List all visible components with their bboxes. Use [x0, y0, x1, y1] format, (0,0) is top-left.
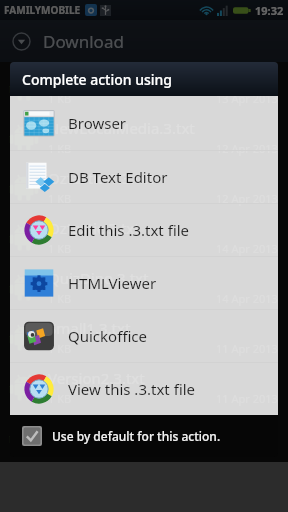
staticText: 13 Apr 2013: [216, 91, 278, 106]
button[interactable]: DB Text Editor: [10, 151, 278, 203]
button[interactable]: HTMLViewer: [10, 257, 278, 309]
staticText: 1 KB: [48, 391, 72, 406]
staticText: MyApps.3.txt: [48, 68, 140, 88]
button[interactable]: MyApps.3.txt: [8, 62, 280, 112]
button[interactable]: VideoOne.3.txt: [8, 412, 280, 462]
staticText: 1 KB: [48, 291, 72, 306]
staticText: Oztastic.3.txt: [48, 218, 140, 238]
staticText: 19:32: [255, 3, 284, 18]
button[interactable]: Edit this .3.txt file: [10, 204, 278, 256]
staticText: FAMILYMOBILE: [4, 3, 81, 17]
staticText: Use by default for this action.: [52, 428, 221, 444]
staticText: Download: [43, 30, 124, 53]
staticText: Browser: [68, 113, 127, 133]
staticText: 1 KB: [48, 91, 72, 106]
staticText: Quickoffice: [68, 326, 147, 346]
staticText: View this .3.txt file: [68, 379, 196, 399]
button[interactable]: Oztastic.3.txt: [8, 212, 280, 262]
staticText: Version2.3.txt: [48, 368, 145, 388]
button[interactable]: NewLocalMedia.3.txt: [8, 112, 280, 162]
button[interactable]: Quickoffice: [10, 310, 278, 362]
button[interactable]: View this .3.txt file: [10, 363, 278, 415]
button[interactable]: Version2.3.txt: [8, 362, 280, 412]
staticText: Edit this .3.txt file: [68, 220, 190, 240]
staticText: HTMLViewer: [68, 273, 157, 293]
staticText: Oztastic-1.3.txt: [48, 168, 154, 188]
staticText: Small1.3.txt: [48, 318, 131, 338]
button[interactable]: Oztastic-1.3.txt: [8, 162, 280, 212]
staticText: 1 KB: [48, 341, 72, 356]
staticText: Complete action using: [22, 70, 173, 89]
staticText: VideoOne.3.txt: [48, 418, 153, 438]
button[interactable]: Browser: [10, 96, 278, 150]
staticText: NewLocalMedia.3.txt: [48, 118, 195, 138]
button[interactable]: Small1.3.txt: [8, 312, 280, 362]
button[interactable]: Download options: [0, 20, 288, 62]
other: Download options: [12, 32, 31, 51]
button[interactable]: Use by default for this action.: [22, 415, 278, 457]
staticText: DB Text Editor: [68, 167, 168, 187]
staticText: QuizDino.3.txt: [48, 268, 149, 288]
button[interactable]: QuizDino.3.txt: [8, 262, 280, 312]
